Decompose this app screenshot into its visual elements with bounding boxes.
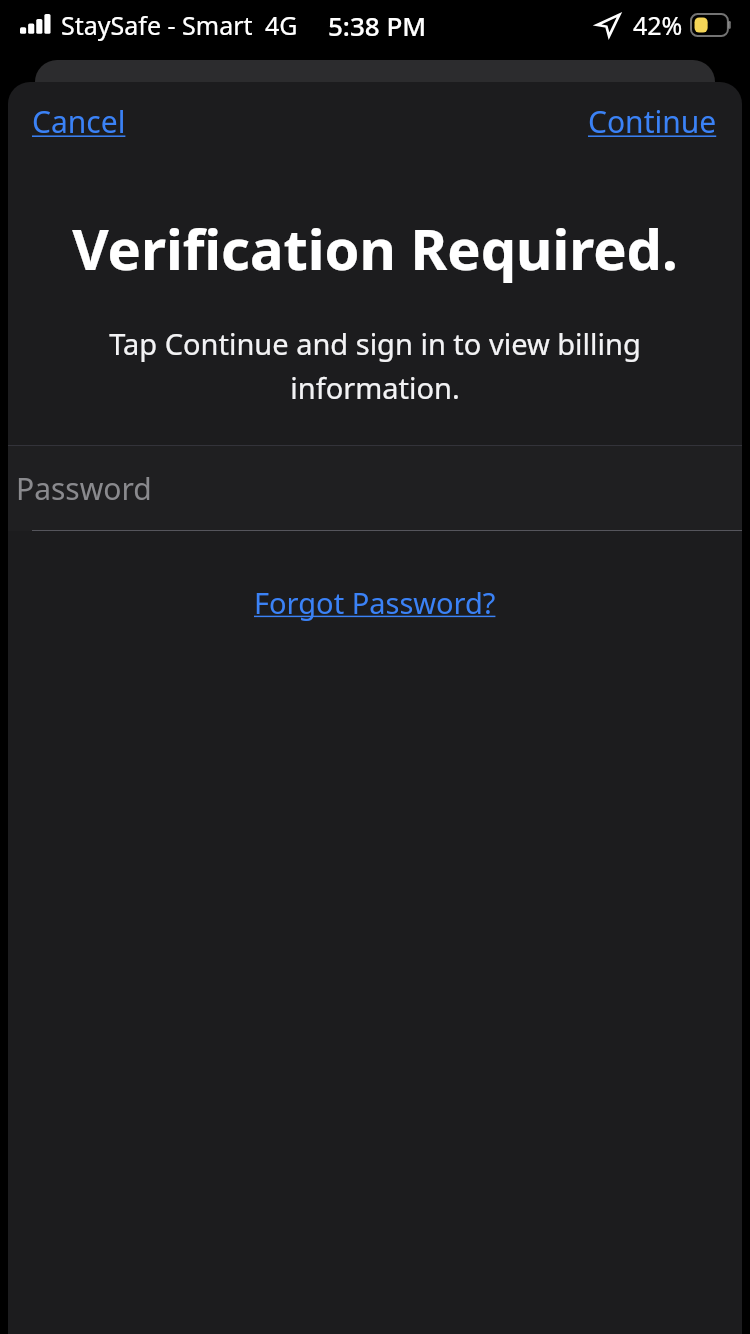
staticText: 5:38 PM xyxy=(328,8,427,43)
staticText: Tap Continue and sign in to view billing… xyxy=(104,324,646,407)
button[interactable]: Forgot Password? xyxy=(238,577,512,628)
button[interactable]: Cancel xyxy=(18,93,140,150)
staticText: 42% xyxy=(633,8,683,42)
staticText: 4G xyxy=(265,8,298,42)
staticText: Verification Required. xyxy=(28,210,722,286)
staticText: Continue xyxy=(588,101,717,142)
staticText: Forgot Password? xyxy=(254,583,496,622)
staticText: Password xyxy=(16,468,152,509)
staticText: Cancel xyxy=(32,101,126,142)
button[interactable]: Password xyxy=(8,445,742,531)
staticText: StaySafe - Smart xyxy=(61,8,253,42)
button[interactable]: Continue xyxy=(574,93,731,150)
